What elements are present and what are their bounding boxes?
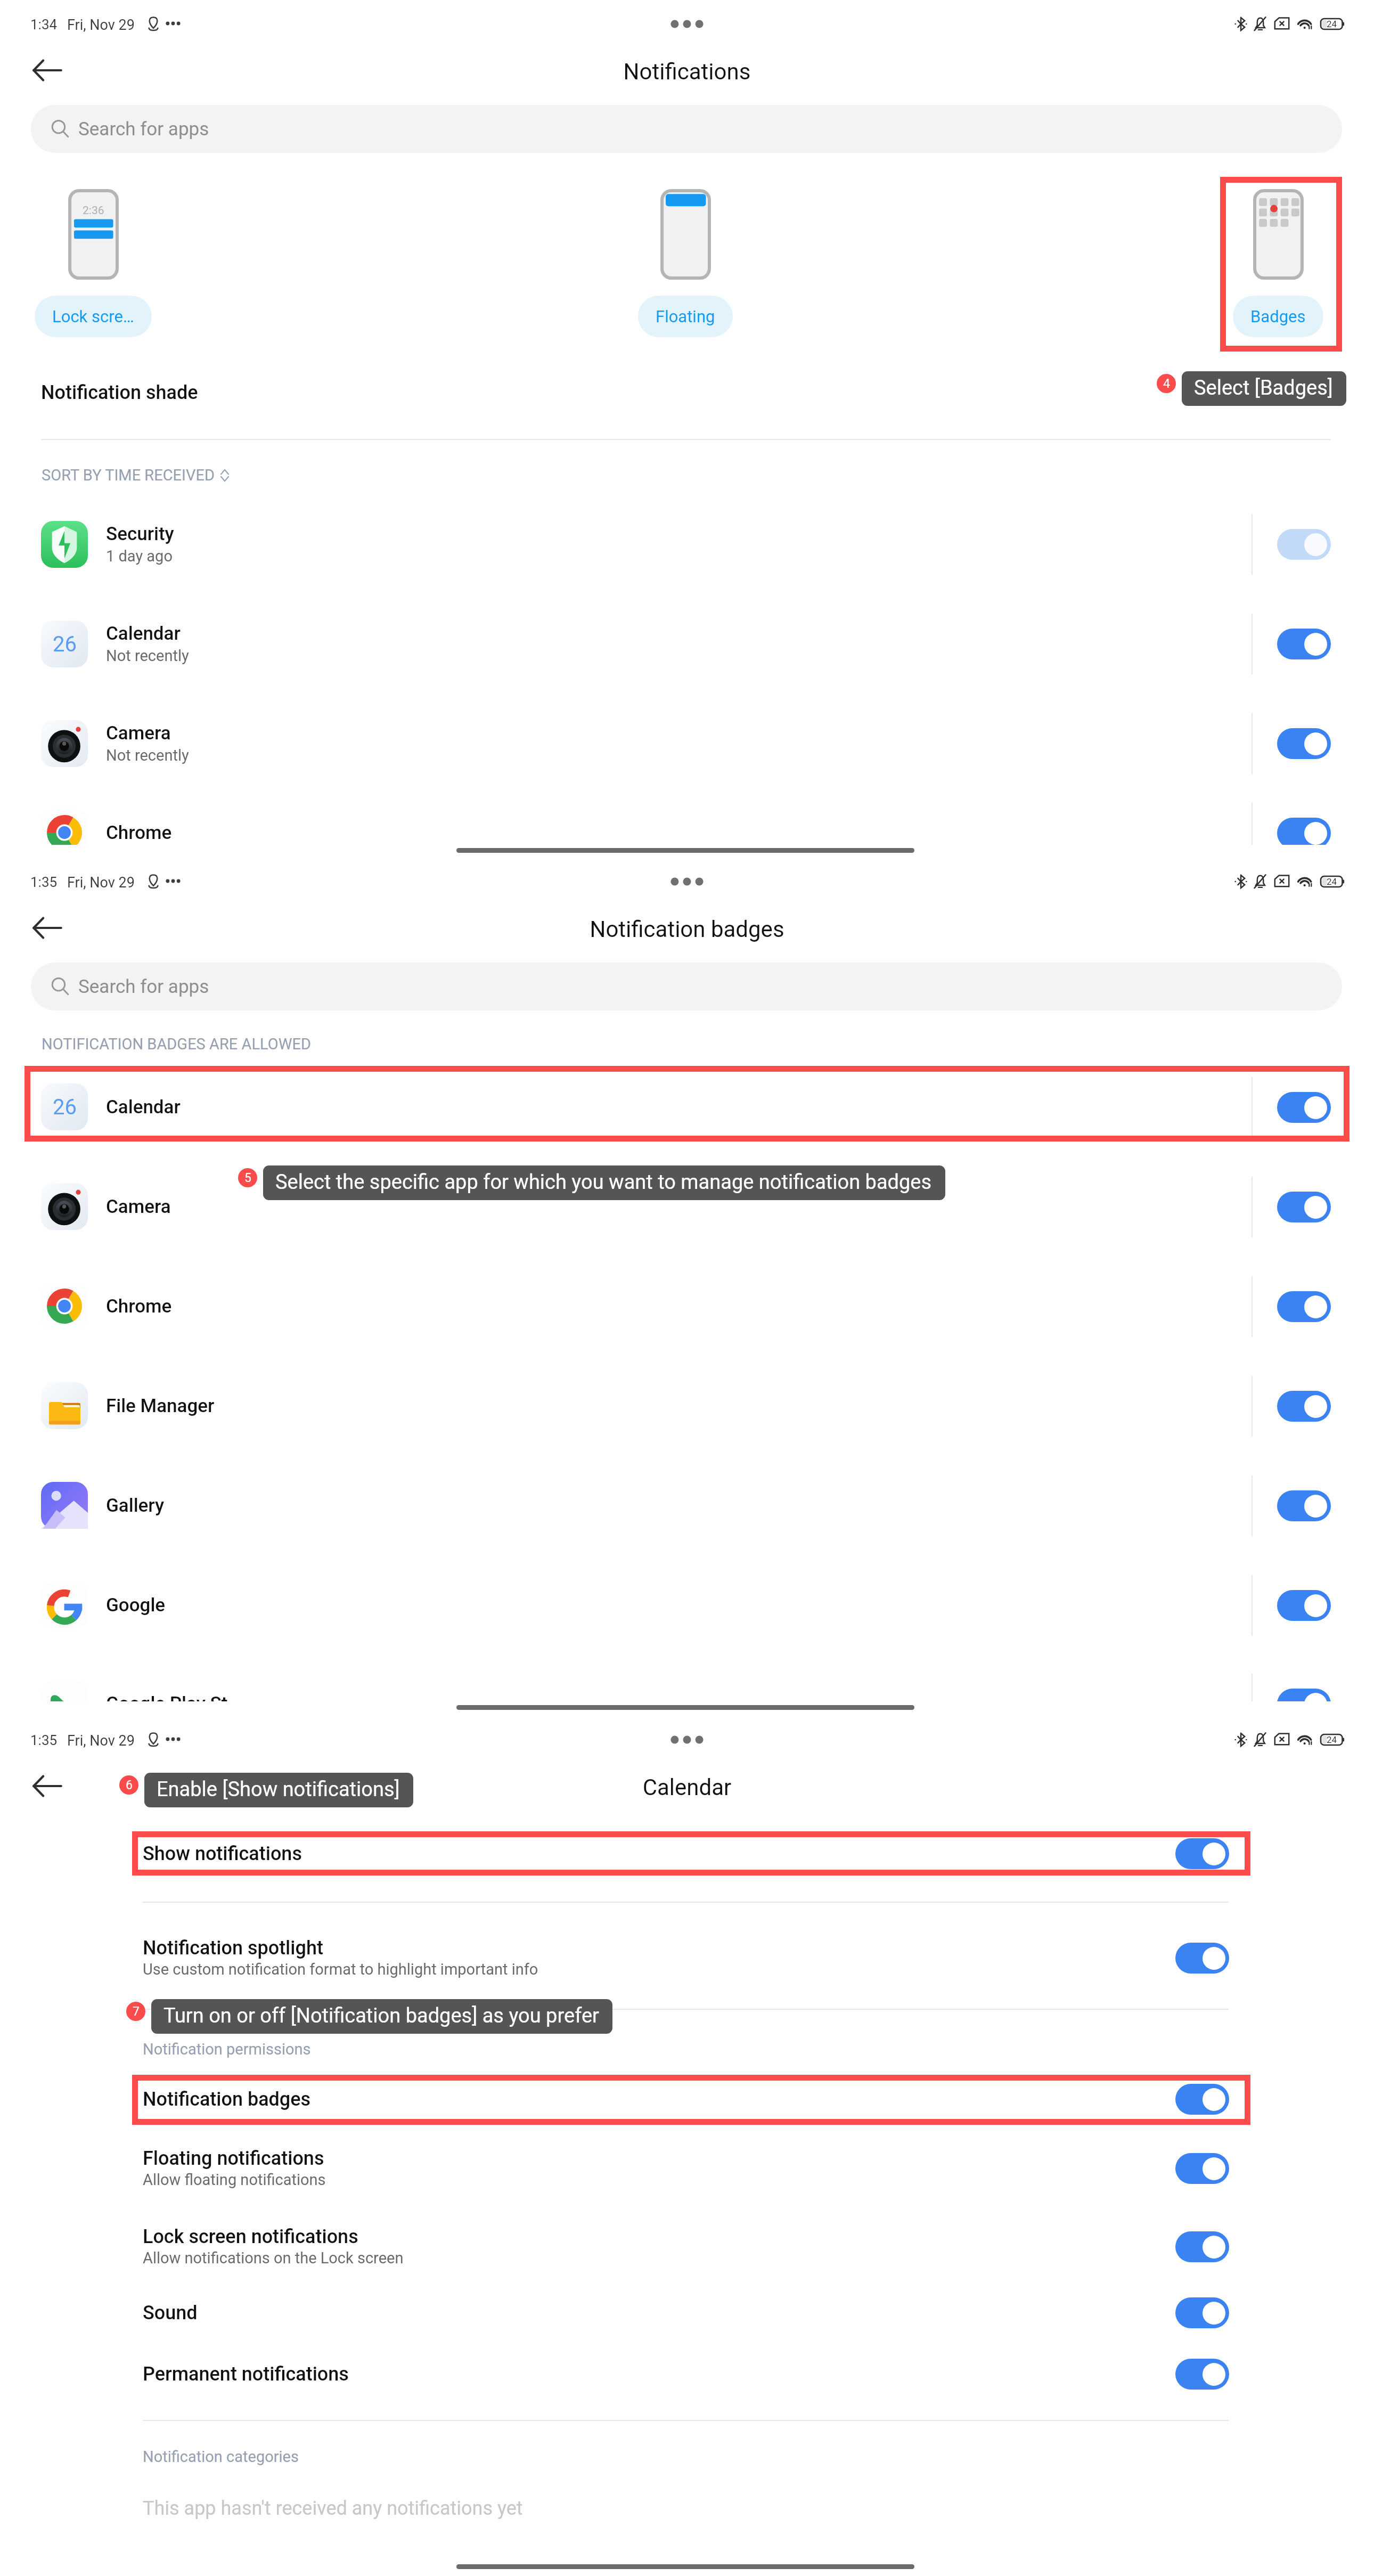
button[interactable]: Select [Badges] [1182,371,1346,406]
staticText: Floating notifications [143,2147,324,2170]
button[interactable]: Badges selected [1220,177,1342,352]
button[interactable] [1277,818,1331,845]
button[interactable]: Search for apps [31,963,1342,1010]
button[interactable]: Badges [1217,176,1339,346]
button[interactable]: Google [0,1556,1374,1655]
staticText: Notification categories [143,2448,299,2466]
staticText: 26 [53,1095,77,1120]
staticText: 5 [244,1171,251,1185]
button[interactable]: Select the specific app for which you wa… [263,1165,945,1200]
button[interactable] [1277,1590,1331,1621]
button[interactable] [1277,1391,1331,1422]
button[interactable] [1175,2359,1229,2390]
button[interactable] [1277,1291,1331,1322]
staticText: Search for apps [78,118,209,140]
staticText: Sound [143,2302,198,2324]
button[interactable] [0,2287,1374,2338]
staticText: Notification shade [41,381,198,404]
button[interactable] [1175,2084,1229,2115]
staticText: Fri, Nov 29 [67,17,135,34]
button[interactable]: Badges [1233,296,1323,337]
button[interactable] [0,1923,1374,1993]
button[interactable]: Camera [0,694,1374,793]
staticText: 24 [1327,1734,1337,1745]
button[interactable] [1277,1192,1331,1222]
staticText: Notification badges [0,916,1374,942]
button[interactable] [1277,629,1331,659]
button[interactable]: Enable [Show notifications] [144,1773,413,1807]
button[interactable]: 26 [0,1058,1374,1157]
button[interactable] [0,2212,1374,2281]
button[interactable] [1175,1838,1229,1869]
staticText: Calendar [106,1096,181,1118]
button[interactable]: Floating [638,296,733,337]
staticText: File Manager [106,1395,215,1417]
staticText: NOTIFICATION BADGES ARE ALLOWED [42,1035,311,1053]
staticText: Turn on or off [Notification badges] as … [163,2004,599,2028]
staticText: Fri, Nov 29 [67,874,135,891]
staticText: Not recently [106,647,189,665]
staticText: Allow notifications on the Lock screen [143,2249,404,2267]
button[interactable]: Back [22,1760,73,1812]
staticText: 24 [1327,19,1337,29]
button[interactable]: Google Play St… [0,1654,1374,1702]
button[interactable]: Show notifications highlighted [132,1831,1250,1876]
button[interactable]: Lock scre… [35,296,152,337]
staticText: Enable [Show notifications] [157,1778,400,1801]
staticText: Chrome [106,1295,172,1317]
button[interactable] [1175,2297,1229,2328]
button[interactable]: Chrome [0,784,1374,845]
button[interactable] [1277,529,1331,560]
staticText: This app hasn't received any notificatio… [143,2497,523,2520]
staticText: 24 [1327,876,1337,887]
button[interactable] [0,2074,1374,2125]
staticText: Notifications [0,59,1374,85]
staticText: Floating [656,307,715,326]
button[interactable]: Security [0,495,1374,594]
button[interactable]: Back [22,45,73,96]
staticText: Fri, Nov 29 [67,1732,135,1749]
button[interactable]: Turn on or off [Notification badges] as … [151,1999,612,2034]
button[interactable] [0,2349,1374,2400]
staticText: 2:36 [83,204,104,217]
staticText: Notification badges [143,2088,311,2110]
staticText: Calendar [0,1774,1374,1800]
button[interactable] [1175,2153,1229,2184]
button[interactable]: Search for apps [31,105,1342,153]
button[interactable]: Gallery [0,1456,1374,1555]
staticText: Use custom notification format to highli… [143,1960,538,1978]
staticText: 1:34 [30,17,58,32]
staticText: Permanent notifications [143,2363,349,2385]
staticText: Lock scre… [52,307,134,326]
staticText: Google [106,1594,166,1616]
staticText: Chrome [106,822,172,844]
button[interactable] [0,2134,1374,2203]
staticText: 26 [53,632,77,657]
button[interactable]: 26 [0,594,1374,694]
staticText: Notification spotlight [143,1937,323,1959]
button[interactable] [1277,1689,1331,1702]
button[interactable] [1175,1943,1229,1974]
staticText: 1:35 [30,874,58,890]
staticText: Lock screen notifications [143,2226,358,2248]
button[interactable]: Calendar selected [24,1066,1350,1142]
button[interactable]: Floating [625,176,746,346]
button[interactable] [1277,1092,1331,1123]
button[interactable] [1175,2231,1229,2262]
button[interactable]: Back [22,902,73,953]
button[interactable] [0,1828,1374,1879]
button[interactable]: Chrome [0,1257,1374,1356]
staticText: Not recently [106,746,189,764]
button[interactable] [1277,728,1331,759]
staticText: 4 [1163,377,1170,391]
button[interactable]: File Manager [0,1357,1374,1456]
button[interactable]: 2:36 [32,176,154,346]
staticText: Search for apps [78,976,209,998]
button[interactable]: Camera [0,1157,1374,1257]
staticText: Allow floating notifications [143,2171,326,2189]
button[interactable]: Notification badges highlighted [132,2075,1250,2125]
staticText: 1:35 [30,1732,58,1748]
button[interactable] [1277,1490,1331,1521]
staticText: Badges [1250,307,1306,326]
staticText: Select [Badges] [1194,376,1333,400]
